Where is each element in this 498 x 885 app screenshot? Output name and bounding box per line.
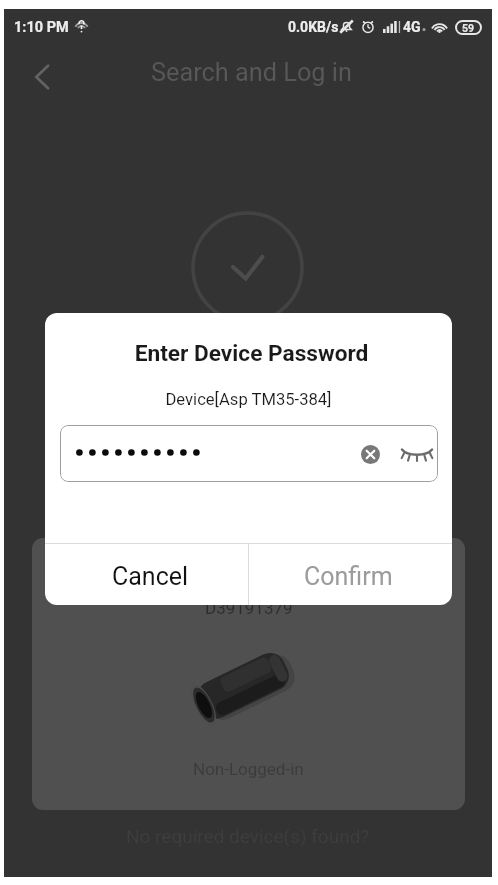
staticText: Search and Log in — [151, 58, 352, 88]
button[interactable]: No required device(s) found? — [126, 825, 370, 847]
staticText: Enter Device Password — [48, 340, 452, 367]
button[interactable]: Confirm — [249, 544, 452, 605]
button[interactable]: Cancel — [45, 544, 248, 605]
staticText: 1:10 PM — [14, 19, 69, 36]
button[interactable]: Clear text — [60, 425, 438, 482]
staticText: Device[Asp TM35-384] — [45, 390, 452, 409]
staticText: 59 — [462, 22, 475, 34]
staticText: No required device(s) found? — [126, 825, 370, 847]
button[interactable]: Back — [23, 57, 63, 97]
staticText: Non-Logged-in — [193, 759, 304, 779]
staticText: 0.0KB/s — [288, 19, 339, 35]
button[interactable]: Show password — [399, 436, 435, 472]
staticText: Cancel — [112, 562, 189, 591]
staticText: 4G — [403, 19, 421, 35]
button[interactable]: D39191379 — [32, 538, 465, 810]
staticText: D39191379 — [205, 598, 293, 618]
button[interactable]: Clear text — [354, 438, 386, 470]
staticText: Confirm — [304, 562, 393, 591]
